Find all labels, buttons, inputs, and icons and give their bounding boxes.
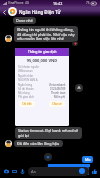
staticText: VinaPhone	[8, 1, 24, 5]
button[interactable]: Đã đến cửa lần lồng hậu	[14, 140, 63, 147]
button[interactable]: Avatar	[5, 35, 12, 42]
button[interactable]: Chi tiết	[19, 101, 35, 107]
staticText: Ngân hàng	[18, 83, 33, 87]
button[interactable]: Status timeout. Đợi bank refund sẽ gửi l…	[15, 127, 82, 139]
button[interactable]: Camera	[2, 166, 10, 176]
button[interactable]: More options	[75, 84, 83, 92]
staticText: 098xxxxxxx	[18, 69, 33, 73]
staticText: Tài khoản nguồn	[18, 65, 40, 69]
button[interactable]: Microphone	[18, 166, 26, 176]
staticText: Status timeout. Đợi bank refund sẽ gửi l…	[18, 128, 79, 138]
button[interactable]: Scroll to bottom	[44, 153, 52, 161]
button[interactable]: Gallery	[10, 166, 18, 176]
staticText: Mic	[85, 157, 91, 162]
staticText: 4G	[25, 1, 30, 5]
button[interactable]: Back	[1, 7, 8, 17]
staticText: Không tin người thì không dùng, đã dùng …	[17, 27, 75, 41]
staticText: Chia sẻ	[52, 102, 62, 106]
staticText: Miễn phí	[54, 95, 66, 99]
staticText: Ngân Hàng Điện Tử	[19, 9, 61, 15]
staticText: Đã đến cửa lần lồng hậu	[17, 141, 60, 146]
button[interactable]: Avatar	[5, 140, 12, 147]
staticText: Phí giao dịch	[18, 95, 35, 99]
staticText: 95,000,000 VND	[15, 58, 69, 63]
button[interactable]: Send a like	[91, 168, 98, 175]
button[interactable]: Heart reaction	[72, 41, 78, 46]
button[interactable]: Ngân Hàng Điện Tử	[19, 9, 100, 15]
button[interactable]: Không tin người thì không dùng, đã dùng …	[14, 26, 78, 42]
staticText: Người nhận	[18, 74, 34, 78]
staticText: NGUYEN VAN A	[18, 78, 38, 82]
staticText: Nội dung	[18, 91, 30, 95]
button[interactable]: Profile	[8, 7, 17, 16]
staticText: Aa	[31, 169, 36, 174]
button[interactable]: Chia sẻ	[49, 101, 65, 107]
staticText: Số tài khoản	[18, 87, 34, 91]
staticText: Vietcombank	[49, 83, 66, 87]
staticText: 16:42	[53, 1, 63, 6]
staticText: Done nhé	[16, 18, 33, 23]
staticText: Thanh toan	[51, 91, 66, 95]
button[interactable]: Aa	[28, 167, 89, 176]
staticText: 76	[86, 1, 90, 5]
staticText: Chi tiết	[22, 102, 32, 106]
button[interactable]: Done nhé	[13, 17, 36, 24]
staticText: 0123456789	[50, 87, 66, 91]
staticText: Thông tin giao dịch	[28, 50, 57, 54]
